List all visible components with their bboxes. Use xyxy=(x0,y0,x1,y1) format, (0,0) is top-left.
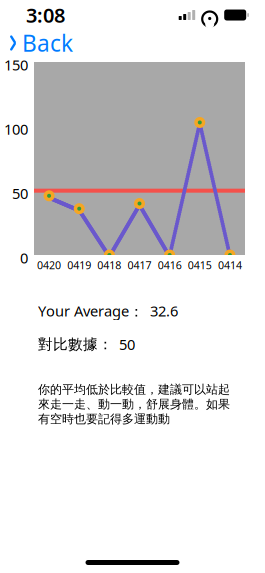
staticText: 3:08 xyxy=(26,2,65,28)
staticText: 0 xyxy=(20,248,28,267)
staticText: 0420 xyxy=(37,258,61,272)
staticText: 0414 xyxy=(218,258,242,272)
staticText: 50 xyxy=(119,335,135,354)
staticText: 0415 xyxy=(188,258,212,272)
staticText: 50 xyxy=(12,184,28,203)
staticText: Your Average： xyxy=(38,301,144,321)
staticText: 100 xyxy=(4,119,28,139)
staticText: 你的平均低於比較值，建議可以站起來走一走、動一動，舒展身體。如果有空時也要記得多… xyxy=(38,382,230,426)
staticText: 32.6 xyxy=(150,301,178,320)
staticText: 0417 xyxy=(127,258,151,272)
staticText: Back xyxy=(22,28,73,58)
staticText: 0419 xyxy=(67,258,91,272)
staticText: 對比數據： xyxy=(38,335,113,353)
button[interactable]: Back xyxy=(0,30,83,56)
staticText: 150 xyxy=(4,55,28,74)
staticText: 0416 xyxy=(158,258,182,272)
staticText: 0418 xyxy=(97,258,121,272)
